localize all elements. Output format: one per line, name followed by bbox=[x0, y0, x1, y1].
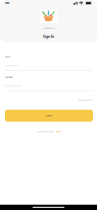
staticText: ECO GROCERY ID bbox=[42, 27, 54, 29]
staticText: Email bbox=[5, 56, 11, 58]
staticText: Don't have an account? bbox=[37, 130, 55, 133]
staticText: Enter your email bbox=[5, 64, 18, 67]
staticText: Forgot password? bbox=[78, 99, 93, 101]
staticText: Enter your password bbox=[5, 84, 22, 87]
button[interactable]: Sign In bbox=[5, 110, 93, 122]
staticText: Sign In bbox=[43, 34, 54, 39]
staticText: 9:41 bbox=[5, 1, 9, 5]
staticText: Sign In bbox=[46, 114, 52, 117]
button[interactable]: Forgot password? bbox=[78, 99, 93, 101]
staticText: Password bbox=[5, 76, 13, 78]
button[interactable]: Don't have an account? bbox=[5, 130, 93, 133]
staticText: Sign Up bbox=[56, 130, 61, 133]
